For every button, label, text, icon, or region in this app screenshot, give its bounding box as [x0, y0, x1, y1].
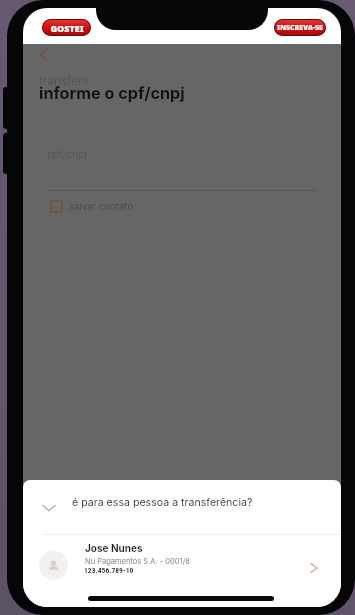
staticText: transferir [39, 74, 90, 88]
staticText: Jose Nunes [85, 542, 143, 554]
staticText: INSCREVA-SE [277, 23, 323, 33]
staticText: é para essa pessoa a transferência? [72, 496, 253, 509]
button[interactable] [23, 535, 341, 591]
staticText: Nu Pagamentos S.A. - 0001/8 [85, 557, 190, 566]
button[interactable]: INSCREVA-SE [274, 19, 326, 36]
button[interactable] [23, 492, 341, 530]
staticText: informe o cpf/cnpj [39, 83, 185, 103]
staticText: 123.456.789-10 [84, 566, 134, 575]
staticText: cpf/cnpj [47, 148, 87, 160]
button[interactable]: Voltar [32, 42, 57, 67]
other: Abrir [304, 558, 324, 578]
other: Recolher [37, 496, 61, 520]
button[interactable]: GOSTEI [42, 19, 91, 36]
staticText: GOSTEI [50, 22, 84, 34]
button[interactable]: salvar contato [50, 200, 134, 213]
staticText: salvar contato [69, 201, 134, 213]
